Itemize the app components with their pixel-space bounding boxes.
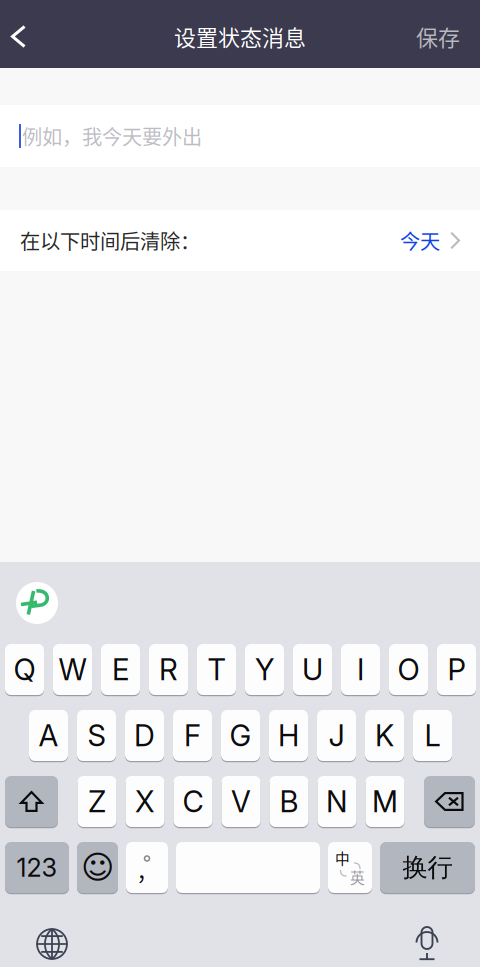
button[interactable]: Q bbox=[5, 644, 44, 697]
staticText: 换行 bbox=[402, 851, 452, 883]
button[interactable] bbox=[176, 842, 320, 895]
staticText: O bbox=[397, 652, 419, 687]
staticText: 中 bbox=[335, 847, 350, 868]
button[interactable]: Delete bbox=[424, 776, 475, 829]
staticText: T bbox=[207, 652, 225, 687]
staticText: 今天 bbox=[400, 226, 440, 255]
staticText: Q bbox=[13, 652, 35, 687]
staticText: 英 bbox=[350, 866, 365, 888]
button[interactable]: H bbox=[269, 710, 308, 763]
staticText: I bbox=[357, 652, 364, 687]
staticText: C bbox=[182, 784, 203, 819]
button[interactable]: Z bbox=[77, 776, 116, 829]
staticText: A bbox=[38, 718, 58, 753]
button[interactable]: D bbox=[125, 710, 164, 763]
staticText: M bbox=[372, 784, 398, 819]
staticText: 例如，我今天要外出 bbox=[22, 121, 202, 151]
staticText: G bbox=[229, 718, 251, 753]
button[interactable]: I bbox=[341, 644, 380, 697]
staticText: D bbox=[134, 718, 155, 753]
button[interactable]: V bbox=[221, 776, 260, 829]
staticText: 123 bbox=[16, 852, 57, 883]
button[interactable]: E bbox=[101, 644, 140, 697]
button[interactable]: Chinese English toggle bbox=[328, 842, 372, 895]
button[interactable]: S bbox=[77, 710, 116, 763]
button[interactable]: F bbox=[173, 710, 212, 763]
staticText: H bbox=[278, 718, 299, 753]
button[interactable]: Input method bbox=[16, 582, 58, 624]
button[interactable]: O bbox=[389, 644, 428, 697]
button[interactable]: Back bbox=[0, 2, 44, 70]
button[interactable]: Emoji bbox=[77, 842, 118, 895]
staticText: ☺ bbox=[81, 849, 114, 886]
button[interactable]: Shift bbox=[5, 776, 58, 829]
staticText: ， bbox=[136, 856, 157, 886]
button[interactable]: Punctuation bbox=[126, 842, 168, 895]
staticText: R bbox=[159, 652, 178, 687]
staticText: F bbox=[184, 718, 201, 753]
button[interactable]: C bbox=[173, 776, 212, 829]
button[interactable]: M bbox=[365, 776, 404, 829]
staticText: J bbox=[328, 718, 344, 753]
staticText: E bbox=[112, 652, 129, 687]
button[interactable]: G bbox=[221, 710, 260, 763]
staticText: K bbox=[375, 718, 394, 753]
button[interactable]: N bbox=[317, 776, 356, 829]
button[interactable]: K bbox=[365, 710, 404, 763]
staticText: 设置状态消息 bbox=[174, 21, 306, 52]
button[interactable]: 123 bbox=[5, 842, 69, 895]
staticText: Z bbox=[88, 784, 106, 819]
staticText: W bbox=[58, 652, 86, 687]
staticText: B bbox=[279, 784, 298, 819]
button[interactable]: T bbox=[197, 644, 236, 697]
button[interactable]: Y bbox=[245, 644, 284, 697]
button[interactable]: Dictation bbox=[397, 922, 457, 966]
button[interactable]: P bbox=[437, 644, 476, 697]
button[interactable]: 保存 bbox=[416, 2, 480, 70]
button[interactable]: W bbox=[53, 644, 92, 697]
staticText: N bbox=[326, 784, 348, 819]
staticText: Y bbox=[255, 652, 274, 687]
staticText: X bbox=[135, 784, 155, 819]
staticText: 保存 bbox=[416, 21, 460, 52]
button[interactable]: R bbox=[149, 644, 188, 697]
staticText: V bbox=[231, 784, 251, 819]
button[interactable]: 在以下时间后清除： bbox=[0, 210, 480, 271]
button[interactable]: A bbox=[29, 710, 68, 763]
staticText: 在以下时间后清除： bbox=[20, 226, 200, 255]
staticText: P bbox=[447, 652, 465, 687]
button[interactable]: Switch keyboard bbox=[22, 922, 82, 966]
button[interactable]: X bbox=[125, 776, 164, 829]
button[interactable]: B bbox=[269, 776, 308, 829]
button[interactable]: J bbox=[317, 710, 356, 763]
button[interactable]: 换行 bbox=[380, 842, 475, 895]
staticText: S bbox=[87, 718, 105, 753]
staticText: U bbox=[302, 652, 323, 687]
button[interactable]: U bbox=[293, 644, 332, 697]
staticText: L bbox=[424, 718, 440, 753]
button[interactable]: L bbox=[413, 710, 452, 763]
